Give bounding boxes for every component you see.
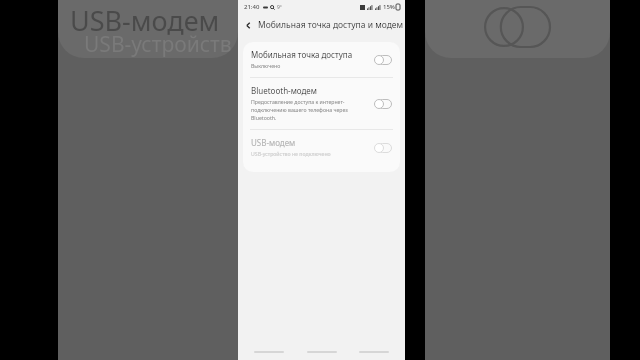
staticText: USB-модем (251, 137, 296, 148)
staticText: Bluetooth. (251, 114, 277, 121)
staticText: 21:40 (244, 3, 260, 11)
staticText: USB-модем (70, 2, 220, 39)
button[interactable]: Переключатель (373, 142, 393, 154)
staticText: 9° (277, 4, 283, 11)
button[interactable]: Переключатель (373, 54, 393, 66)
button[interactable]: Назад (238, 15, 258, 35)
staticText: USB-устройство не подключено (251, 150, 331, 157)
staticText: Мобильная точка доступа (251, 49, 353, 60)
button[interactable]: Bluetooth-модем (243, 78, 400, 129)
staticText: Bluetooth-модем (251, 85, 317, 96)
button[interactable]: Назад (352, 346, 396, 358)
button[interactable]: Переключатель (373, 98, 393, 110)
staticText: Мобильная точка доступа и модем (258, 19, 404, 31)
staticText: Предоставление доступа к интернет- (251, 98, 345, 105)
button[interactable]: USB-модем (243, 130, 400, 165)
staticText: Выключено (251, 62, 281, 69)
button[interactable]: Главный экран (300, 346, 344, 358)
staticText: подключению вашего телефона через (251, 106, 348, 113)
staticText: 15% (383, 3, 395, 11)
staticText: USB-устройств (84, 30, 232, 59)
button[interactable]: Последние (247, 346, 291, 358)
button[interactable]: Мобильная точка доступа (243, 42, 400, 77)
